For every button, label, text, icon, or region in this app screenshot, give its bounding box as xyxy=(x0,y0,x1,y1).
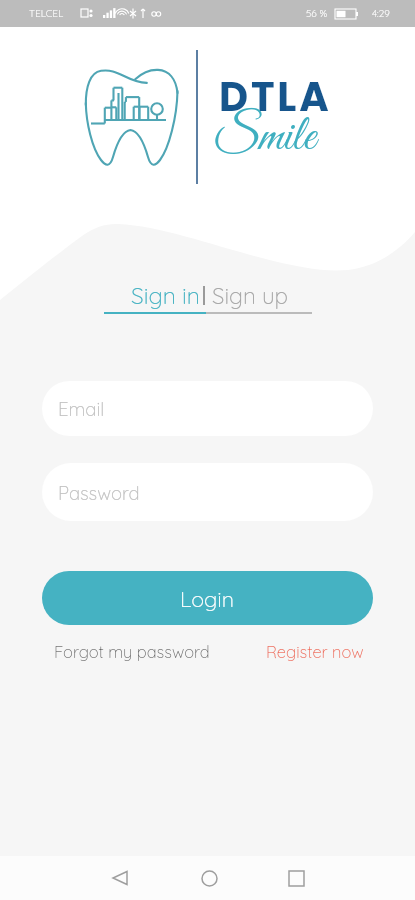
button[interactable]: Sign in xyxy=(114,281,216,314)
button[interactable]: Home xyxy=(179,856,239,900)
button[interactable]: Recent apps xyxy=(266,856,326,900)
button[interactable]: Email xyxy=(42,381,373,436)
staticText: 56 % xyxy=(306,7,328,20)
button[interactable]: Back xyxy=(90,856,150,900)
staticText: Register now xyxy=(266,641,364,662)
button[interactable]: Login xyxy=(42,571,373,625)
staticText: DTLA xyxy=(219,69,332,125)
staticText: Forgot my password xyxy=(54,641,210,662)
staticText: Smile xyxy=(213,107,316,168)
button[interactable]: Forgot my password xyxy=(42,636,222,667)
staticText: Sign up xyxy=(212,281,289,309)
staticText: Password xyxy=(58,481,140,504)
staticText: Login xyxy=(180,585,235,612)
button[interactable]: Sign up xyxy=(197,281,303,314)
staticText: Email xyxy=(58,397,105,420)
staticText: Sign in xyxy=(131,281,200,310)
button[interactable]: Password xyxy=(42,463,373,521)
staticText: 4:29 xyxy=(372,7,390,20)
staticText: TELCEL xyxy=(29,7,64,20)
button[interactable]: Register now xyxy=(257,636,373,667)
